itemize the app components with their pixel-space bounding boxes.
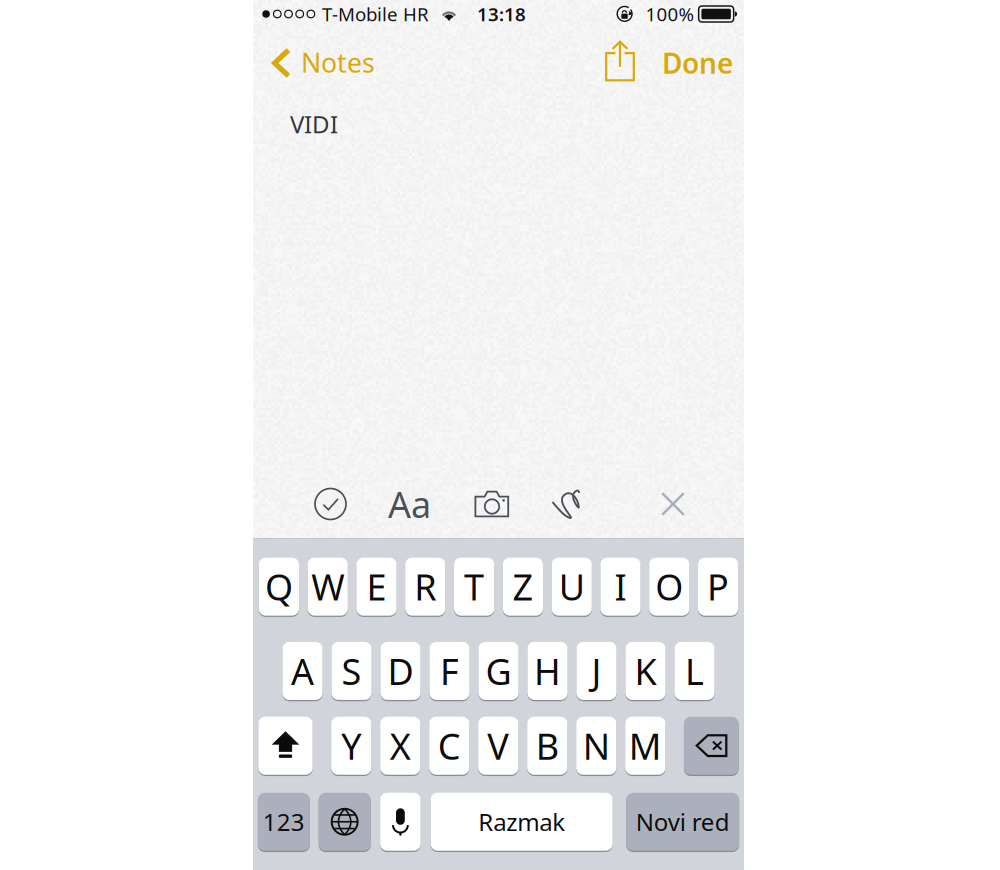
button[interactable]: Razmak [431,792,613,851]
button[interactable]: R [405,557,445,616]
staticText: 123 [263,806,305,838]
button[interactable]: A [282,641,323,701]
button[interactable]: Draw [544,481,588,526]
staticText: Done [662,44,733,82]
button[interactable]: Q [259,557,299,616]
staticText: W [311,563,344,610]
button[interactable]: O [649,557,689,616]
button[interactable]: 123 [258,792,310,851]
staticText: Y [341,722,361,770]
staticText: Novi red [636,806,730,838]
button[interactable]: Formatting [380,472,439,536]
button[interactable]: Camera [466,482,518,526]
button[interactable]: C [429,716,469,775]
staticText: J [591,647,601,695]
staticText: O [655,563,683,610]
button[interactable]: Close toolbar [653,484,693,524]
button[interactable]: J [576,641,617,701]
button[interactable]: Next keyboard [319,792,371,851]
staticText: Razmak [478,806,565,838]
staticText: M [629,722,662,770]
staticText: C [438,722,461,770]
button[interactable]: Delete [684,716,739,775]
button[interactable]: L [674,641,715,701]
staticText: B [536,722,559,770]
button[interactable]: Y [331,716,371,775]
staticText: P [707,563,729,610]
staticText: K [634,647,656,695]
staticText: A [291,647,314,695]
button[interactable]: X [380,716,420,775]
button[interactable]: H [527,641,568,701]
staticText: E [366,563,386,610]
staticText: H [534,647,561,695]
button[interactable]: Novi red [626,792,739,851]
staticText: Notes [301,45,375,80]
staticText: V [487,722,509,770]
button[interactable]: U [552,557,592,616]
button[interactable]: E [356,557,397,616]
staticText: VIDI [290,108,338,140]
button[interactable]: G [478,641,519,701]
staticText: X [390,722,411,770]
button[interactable]: Checklist [307,480,354,527]
staticText: S [341,647,361,695]
staticText: D [387,647,413,695]
staticText: F [440,647,459,695]
staticText: N [583,722,610,770]
button[interactable]: M [625,716,665,775]
button[interactable]: W [308,557,348,616]
button[interactable]: Share [596,33,644,93]
staticText: L [685,647,704,695]
staticText: Q [265,563,293,610]
button[interactable]: F [429,641,470,701]
button[interactable]: K [625,641,666,701]
button[interactable]: N [576,716,616,775]
staticText: Z [512,563,533,610]
button[interactable]: V [478,716,518,775]
staticText: Aa [388,480,431,528]
staticText: 13:18 [477,2,526,26]
staticText: U [559,563,585,610]
button[interactable]: T [454,557,494,616]
button[interactable]: P [698,557,738,616]
button[interactable]: Z [503,557,543,616]
button[interactable]: S [331,641,372,701]
button[interactable]: Dictation [380,792,421,851]
button[interactable]: D [380,641,421,701]
staticText: 100% [645,2,694,26]
button[interactable]: Shift [258,716,313,775]
staticText: G [485,647,511,695]
staticText: I [614,563,626,610]
staticText: T [464,563,484,610]
staticText: T-Mobile HR [322,2,429,26]
button[interactable]: B [527,716,567,775]
button[interactable]: Done [662,33,744,93]
button[interactable]: I [600,557,641,616]
button[interactable]: Notes [253,33,375,93]
staticText: R [414,563,436,610]
